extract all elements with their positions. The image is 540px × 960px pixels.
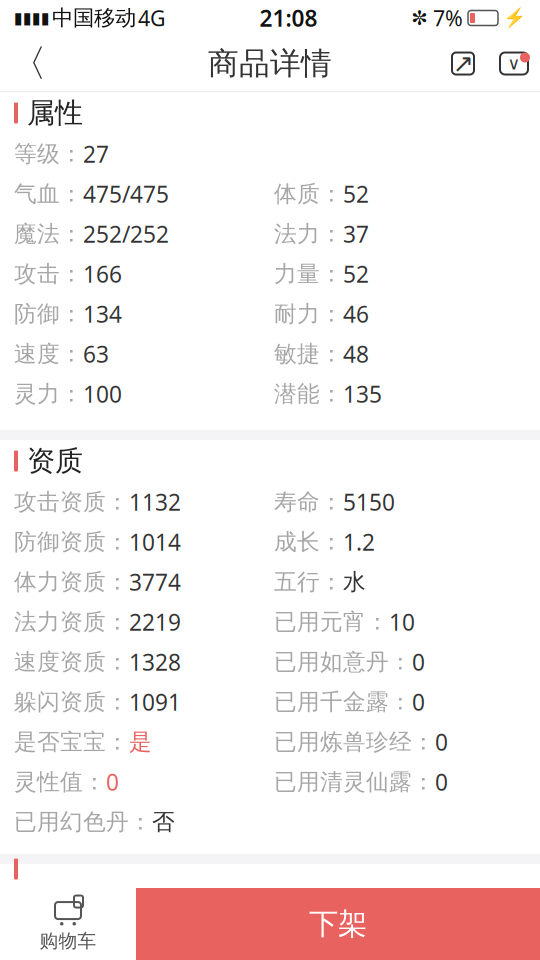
staticText: 46 [343, 299, 369, 329]
staticText: 下架 [309, 906, 367, 942]
staticText: 已用如意丹： [274, 648, 412, 676]
staticText: 2219 [129, 607, 181, 637]
staticText: 躲闪资质： [14, 688, 129, 716]
staticText: 已用千金露： [274, 688, 412, 716]
staticText: 7% [433, 4, 463, 32]
staticText: 48 [343, 339, 369, 369]
staticText: 是否宝宝： [14, 728, 129, 756]
staticText: 1132 [129, 487, 181, 517]
staticText: 166 [83, 259, 122, 289]
staticText: 耐力： [274, 300, 343, 328]
staticText: 等级： [14, 140, 83, 168]
staticText: 〈 [9, 41, 46, 86]
staticText: 3774 [129, 567, 181, 597]
staticText: 灵力： [14, 380, 83, 408]
staticText: 100 [83, 379, 122, 409]
staticText: 速度资质： [14, 648, 129, 676]
staticText: 252/252 [83, 219, 169, 249]
staticText: 体质： [274, 180, 343, 208]
staticText: ↗ [452, 49, 473, 78]
staticText: ⚡ [503, 7, 526, 29]
staticText: 27 [83, 139, 109, 169]
staticText: 1014 [129, 527, 181, 557]
staticText: 法力： [274, 220, 343, 248]
staticText: ∨ [507, 54, 520, 73]
button[interactable]: Messages [488, 36, 540, 91]
staticText: 52 [343, 179, 369, 209]
staticText: 0 [435, 767, 448, 797]
staticText: 10 [389, 607, 415, 637]
staticText: 52 [343, 259, 369, 289]
staticText: 潜能： [274, 380, 343, 408]
staticText: 是 [129, 728, 152, 756]
staticText: 商品详情 [208, 45, 332, 82]
staticText: 购物车 [39, 929, 96, 952]
staticText: 攻击： [14, 260, 83, 288]
staticText: 1328 [129, 647, 181, 677]
staticText: 1.2 [343, 527, 375, 557]
staticText: 力量： [274, 260, 343, 288]
staticText: 魔法： [14, 220, 83, 248]
staticText: ▮▮▮▮ [14, 9, 50, 27]
staticText: 防御： [14, 300, 83, 328]
staticText: ✼ [411, 7, 428, 29]
button[interactable]: 购物车 [0, 888, 136, 960]
staticText: 135 [343, 379, 382, 409]
staticText: 敏捷： [274, 340, 343, 368]
staticText: 4G [138, 4, 166, 32]
staticText: 21:08 [259, 3, 317, 33]
staticText: 体力资质： [14, 568, 129, 596]
button[interactable]: 下架 [136, 888, 540, 960]
staticText: 475/475 [83, 179, 169, 209]
staticText: 0 [435, 727, 448, 757]
staticText: 134 [83, 299, 122, 329]
staticText: 37 [343, 219, 369, 249]
staticText: 0 [412, 647, 425, 677]
staticText: 已用炼兽珍经： [274, 728, 435, 756]
staticText: 防御资质： [14, 528, 129, 556]
button[interactable]: Back [0, 36, 56, 91]
staticText: 五行： [274, 568, 343, 596]
staticText: 水 [343, 568, 366, 596]
staticText: 否 [152, 808, 175, 836]
staticText: 气血： [14, 180, 83, 208]
staticText: 中国移动 [52, 5, 136, 31]
staticText: 63 [83, 339, 109, 369]
staticText: 5150 [343, 487, 395, 517]
staticText: 灵性值： [14, 768, 106, 796]
staticText: 寿命： [274, 488, 343, 516]
staticText: 资质 [27, 444, 83, 478]
staticText: 已用清灵仙露： [274, 768, 435, 796]
staticText: 攻击资质： [14, 488, 129, 516]
button[interactable]: Share [438, 36, 488, 91]
staticText: 速度： [14, 340, 83, 368]
staticText: 属性 [27, 96, 83, 130]
staticText: 成长： [274, 528, 343, 556]
staticText: 已用元宵： [274, 608, 389, 636]
staticText: 1091 [129, 687, 181, 717]
staticText: 已用幻色丹： [14, 808, 152, 836]
staticText: 法力资质： [14, 608, 129, 636]
staticText: 0 [412, 687, 425, 717]
staticText: 0 [106, 767, 119, 797]
